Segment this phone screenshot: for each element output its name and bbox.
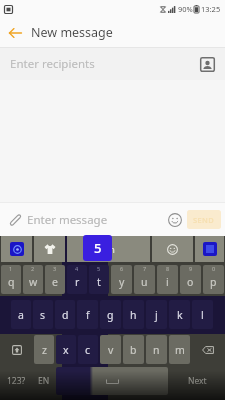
button[interactable]: Delete	[192, 335, 224, 364]
button[interactable]: Insert emoji	[166, 211, 184, 229]
button[interactable]: v	[100, 335, 121, 364]
button[interactable]: k	[169, 300, 190, 329]
staticText: e	[52, 275, 58, 289]
button[interactable]: Add recipient from contacts	[199, 56, 216, 73]
staticText: Enter recipients	[10, 56, 95, 72]
staticText: z	[42, 343, 47, 357]
staticText: 5	[94, 239, 102, 257]
button[interactable]: 8	[157, 265, 178, 294]
staticText: New message	[31, 24, 113, 41]
staticText: l	[201, 308, 204, 322]
staticText: EN	[38, 375, 50, 387]
button[interactable]: 6	[111, 265, 132, 294]
button[interactable]: h	[123, 300, 144, 329]
button[interactable]: j	[146, 300, 167, 329]
button[interactable]: Stickers	[34, 236, 65, 262]
button[interactable]: z	[34, 335, 54, 364]
button[interactable]: Space	[56, 367, 168, 395]
staticText: q	[8, 275, 15, 289]
button[interactable]: 3	[45, 265, 65, 294]
staticText: 4	[75, 265, 79, 272]
staticText: 13:25	[201, 4, 221, 14]
button[interactable]: 4	[67, 265, 87, 294]
staticText: k	[177, 308, 183, 322]
staticText: g	[107, 308, 114, 322]
button[interactable]: EN	[33, 367, 54, 395]
staticText: 123?	[7, 375, 26, 387]
staticText: f	[86, 308, 90, 322]
button[interactable]: n	[146, 335, 167, 364]
staticText: m	[175, 343, 185, 357]
button[interactable]: m	[169, 335, 190, 364]
staticText: 2	[31, 265, 35, 272]
button[interactable]: d	[55, 300, 75, 329]
staticText: Enter message	[27, 212, 108, 228]
button[interactable]: Next	[170, 367, 224, 395]
staticText: 8	[166, 265, 170, 272]
staticText: 5	[97, 265, 101, 272]
button[interactable]: 5	[89, 265, 109, 294]
button[interactable]: a	[11, 300, 31, 329]
staticText: s	[40, 308, 46, 322]
button[interactable]: c	[78, 335, 98, 364]
button[interactable]: ish	[67, 236, 150, 262]
button[interactable]: g	[100, 300, 121, 329]
staticText: x	[63, 343, 69, 357]
staticText: t	[97, 275, 101, 289]
staticText: 6	[120, 265, 124, 272]
staticText: r	[75, 275, 80, 289]
button[interactable]: 0	[203, 265, 224, 294]
staticText: 1	[9, 265, 13, 272]
staticText: j	[155, 308, 158, 322]
staticText: SEND	[193, 215, 215, 225]
button[interactable]: 7	[134, 265, 155, 294]
button[interactable]: Navigate up	[0, 18, 30, 47]
staticText: b	[130, 343, 137, 357]
button[interactable]: f	[77, 300, 98, 329]
button[interactable]: x	[56, 335, 76, 364]
staticText: p	[210, 275, 217, 289]
staticText: d	[62, 308, 69, 322]
staticText: Next	[188, 375, 207, 387]
staticText: 0	[212, 265, 216, 272]
staticText: ish	[102, 243, 115, 256]
button[interactable]: Shift	[1, 335, 32, 364]
staticText: c	[85, 343, 91, 357]
button[interactable]: l	[192, 300, 213, 329]
staticText: 3	[53, 265, 57, 272]
staticText: a	[18, 308, 24, 322]
staticText: u	[141, 275, 148, 289]
staticText: y	[119, 275, 125, 289]
staticText: 90%	[178, 4, 193, 14]
button[interactable]: Keyboard settings	[195, 236, 224, 262]
staticText: o	[187, 275, 194, 289]
button[interactable]: Emoji keyboard	[152, 236, 193, 262]
button[interactable]: SEND	[187, 210, 221, 229]
button[interactable]: 9	[180, 265, 201, 294]
staticText: i	[166, 275, 169, 289]
staticText: h	[130, 308, 137, 322]
button[interactable]: 123?	[1, 367, 31, 395]
staticText: v	[108, 343, 114, 357]
staticText: w	[29, 275, 38, 289]
button[interactable]: 1	[1, 265, 21, 294]
button[interactable]: b	[123, 335, 144, 364]
button[interactable]: 2	[23, 265, 43, 294]
button[interactable]: Voice input	[1, 236, 32, 262]
button[interactable]: s	[33, 300, 53, 329]
staticText: n	[153, 343, 160, 357]
button[interactable]: Attach file	[6, 211, 24, 229]
staticText: 9	[189, 265, 193, 272]
staticText: 7	[143, 265, 147, 272]
